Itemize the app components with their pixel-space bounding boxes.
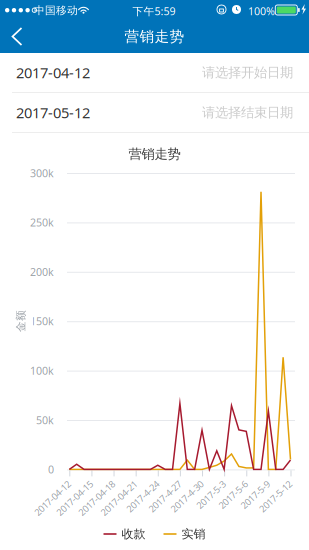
staticText: 2017-04-12 <box>16 63 90 82</box>
staticText: 2017-4-27 <box>139 476 180 489</box>
staticText: 100k <box>30 363 54 378</box>
staticText: 150k <box>30 314 54 328</box>
staticText: 2017-04-18 <box>67 476 113 489</box>
staticText: 收款 <box>121 527 145 541</box>
staticText: 2017-4-24 <box>117 476 158 489</box>
staticText: 请选择结束日期 <box>202 104 293 121</box>
staticText: 2017-5-3 <box>188 476 224 489</box>
staticText: 200k <box>30 265 54 279</box>
staticText: 营销走势 <box>124 27 184 45</box>
staticText: 250k <box>30 215 54 229</box>
button[interactable]: 2017-04-12 <box>0 53 309 93</box>
staticText: 下午5:59 <box>132 4 175 18</box>
button[interactable]: 2017-05-12 <box>0 93 309 133</box>
staticText: 300k <box>30 166 54 180</box>
staticText: 2017-5-9 <box>232 476 268 489</box>
staticText: 100% <box>248 4 275 18</box>
staticText: 营销走势 <box>128 146 180 162</box>
staticText: 中国移动 <box>34 4 78 17</box>
staticText: 金额 <box>10 314 32 327</box>
staticText: 2017-04-21 <box>90 476 136 489</box>
staticText: 50k <box>36 413 54 427</box>
staticText: 2017-5-6 <box>210 476 246 489</box>
staticText: 2017-04-15 <box>45 476 91 489</box>
staticText: 请选择开始日期 <box>202 64 293 81</box>
staticText: 2017-5-12 <box>249 476 290 489</box>
staticText: 0 <box>48 462 54 476</box>
staticText: 2017-05-12 <box>16 103 90 122</box>
staticText: 2017-4-30 <box>161 476 202 489</box>
staticText: 2017-04-12 <box>23 476 69 489</box>
button[interactable]: Back <box>0 20 38 53</box>
staticText: 实销 <box>181 527 205 541</box>
